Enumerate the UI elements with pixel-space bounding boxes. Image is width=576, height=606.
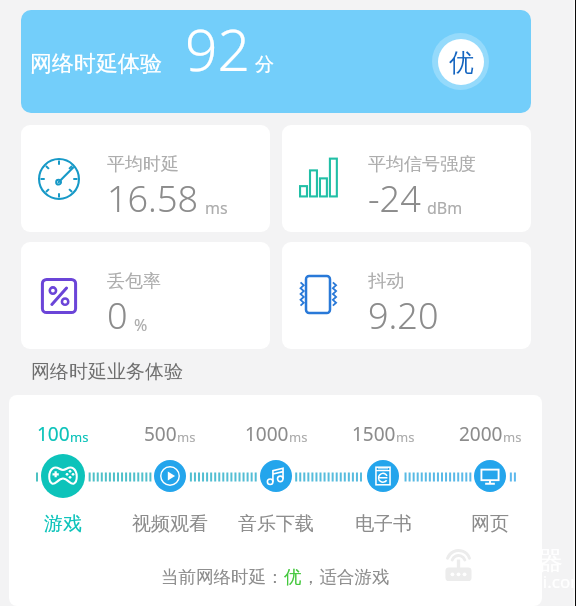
staticText: 优 <box>284 566 302 588</box>
staticText: 网页 <box>471 512 509 536</box>
button[interactable]: 音乐下载 <box>260 460 292 492</box>
staticText: ms <box>70 428 89 446</box>
staticText: 视频观看 <box>132 512 208 536</box>
staticText: ms <box>205 197 228 219</box>
button[interactable]: 抖动 <box>282 242 531 349</box>
button[interactable]: 游戏 <box>41 454 85 498</box>
staticText: ms <box>503 428 522 446</box>
staticText: 平均时延 <box>107 153 179 176</box>
button[interactable]: 平均时延 <box>21 125 270 232</box>
button[interactable]: 视频观看 <box>154 460 186 492</box>
staticText: 网络时延体验 <box>30 50 162 78</box>
staticText: 音乐下载 <box>238 512 314 536</box>
staticText: 92 <box>185 10 251 88</box>
staticText: 平均信号强度 <box>368 153 476 176</box>
staticText: 抖动 <box>368 270 404 293</box>
button[interactable]: 网络时延体验 <box>21 10 531 113</box>
staticText: ，适合游戏 <box>302 566 390 588</box>
staticText: 100 <box>37 421 70 447</box>
staticText: 优 <box>449 47 474 78</box>
staticText: ms <box>177 428 196 446</box>
staticText: 16.58 <box>107 174 199 223</box>
staticText: 游戏 <box>44 512 82 536</box>
staticText: 网络时延业务体验 <box>31 360 183 384</box>
staticText: 1500 <box>352 421 396 447</box>
button[interactable]: 丢包率 <box>21 242 270 349</box>
staticText: 500 <box>144 421 177 447</box>
button[interactable]: 电子书 <box>367 460 399 492</box>
staticText: 9.20 <box>368 291 439 340</box>
staticText: -24 <box>368 174 421 223</box>
staticText: 0 <box>107 291 128 340</box>
staticText: dBm <box>427 197 463 219</box>
button[interactable]: 网页 <box>474 460 506 492</box>
staticText: % <box>134 314 148 336</box>
staticText: 2000 <box>459 421 503 447</box>
staticText: 当前网络时延： <box>161 566 284 588</box>
staticText: ms <box>289 428 308 446</box>
staticText: luyouqi.com <box>488 570 576 593</box>
button[interactable]: 平均信号强度 <box>282 125 531 232</box>
staticText: 丢包率 <box>107 270 161 293</box>
staticText: 路由器 <box>488 545 563 576</box>
staticText: 1000 <box>245 421 289 447</box>
staticText: ms <box>396 428 415 446</box>
staticText: 电子书 <box>355 512 412 536</box>
staticText: 分 <box>255 53 274 77</box>
